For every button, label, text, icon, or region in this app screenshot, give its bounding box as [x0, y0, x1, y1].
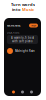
staticText: New [31, 24, 36, 27]
staticText: with soft piano [12, 39, 33, 43]
staticText: A warm lo-fi beat [11, 36, 34, 39]
staticText: Turn words [11, 2, 35, 7]
staticText: DESCRIBE [7, 31, 19, 34]
staticText: Midnight Rain [15, 49, 35, 53]
staticText: Music [22, 7, 34, 12]
button[interactable]: New [29, 23, 38, 27]
staticText: Generate [7, 24, 21, 27]
staticText: into [12, 7, 21, 12]
